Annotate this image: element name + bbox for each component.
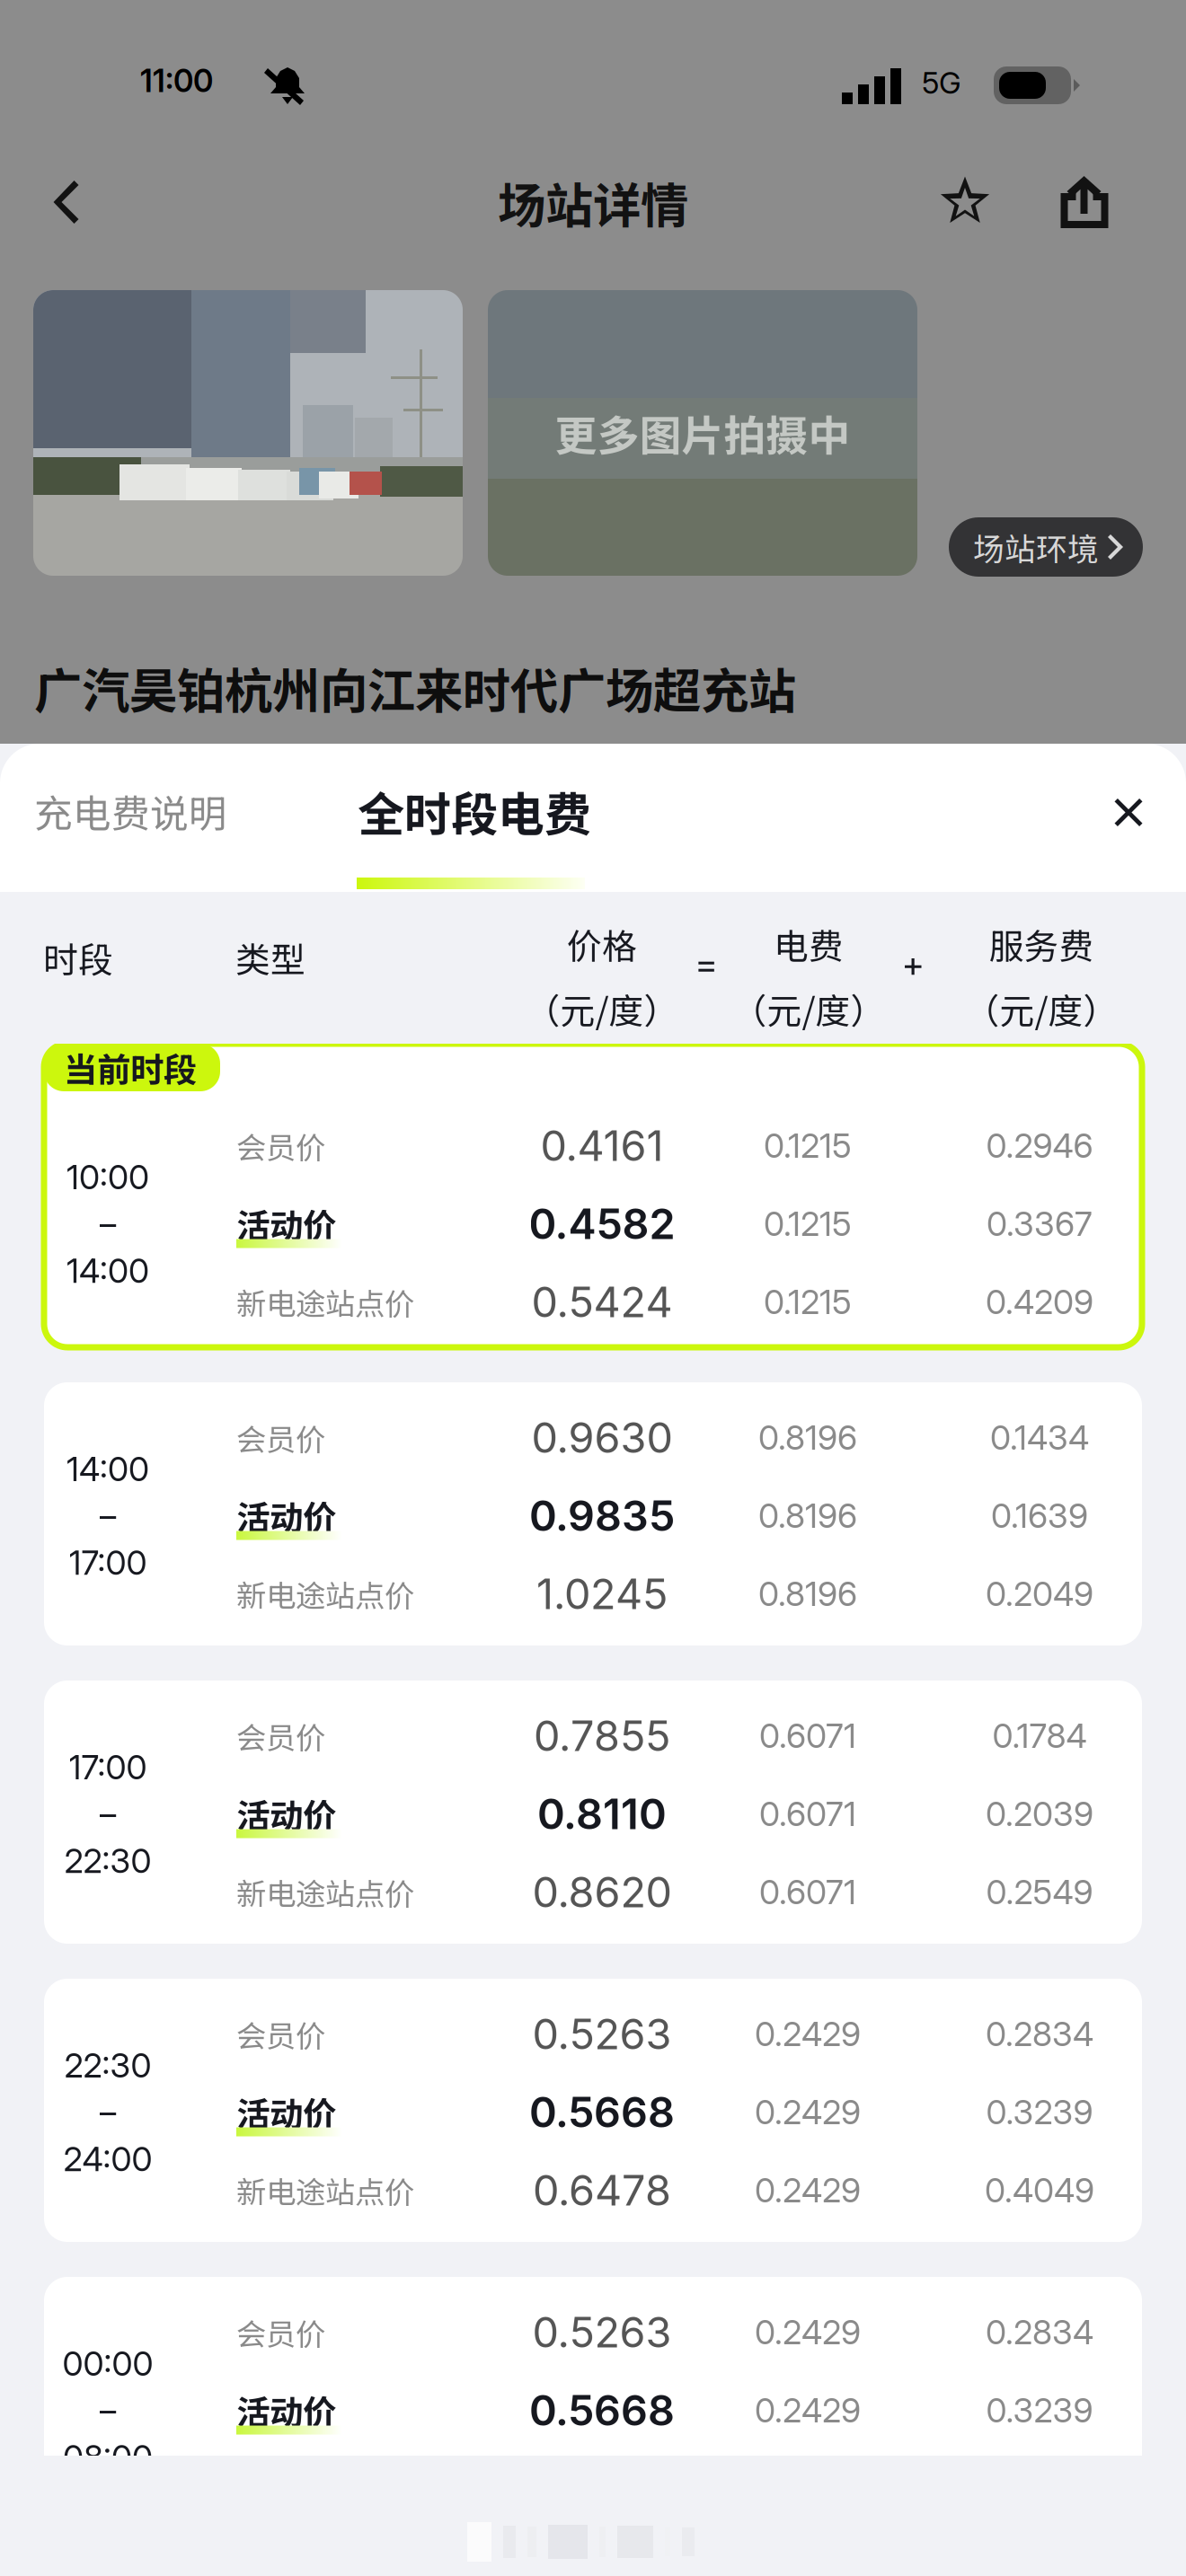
staticText: 服务费 [989,919,1094,969]
staticText: 0.8110 [537,1789,667,1839]
staticText: 24:00 [63,2139,152,2179]
staticText: 0.6071 [759,1794,856,1834]
staticText: 0.1639 [991,1495,1088,1536]
staticText: – [99,2390,116,2431]
staticText: 0.1215 [764,1282,852,1322]
staticText: 0.6071 [759,1715,856,1756]
staticText: 时段 [43,932,113,983]
staticText: 0.2834 [986,2014,1093,2054]
staticText: 0.8196 [758,1417,857,1458]
staticText: 14:00 [66,1250,149,1291]
staticText: 价格 [567,919,637,969]
staticText: = [695,942,717,986]
staticText: 新电途站点价 [236,1280,414,1324]
staticText: 0.2429 [755,2092,861,2132]
staticText: 0.5668 [529,2385,675,2436]
staticText: 充电费说明 [34,783,227,839]
staticText: 0.8620 [532,1867,672,1917]
staticText: 0.3239 [986,2390,1093,2431]
staticText: 新电途站点价 [236,1870,414,1914]
staticText: 活动价 [236,2088,336,2136]
staticText: 活动价 [236,2386,336,2435]
staticText: 0.8196 [758,1574,857,1614]
staticText: 0.6071 [759,1872,856,1912]
staticText: 电费 [774,919,844,969]
staticText: 活动价 [236,1790,336,1838]
staticText: （元/度） [732,984,885,1034]
staticText: 0.2039 [986,1794,1093,1834]
staticText: 更多图片拍摄中 [555,403,850,463]
staticText: 类型 [235,932,305,983]
staticText: 0.6478 [533,2165,671,2216]
staticText: 场站详情 [498,167,688,237]
button[interactable]: Favourite [0,144,1014,260]
staticText: 会员价 [236,1124,325,1167]
button[interactable]: 充电费说明 [0,744,281,878]
staticText: 场站环境 [973,524,1099,570]
staticText: 1.0245 [536,1569,668,1619]
staticText: 会员价 [236,2012,325,2056]
staticText: 0.8196 [758,1495,857,1536]
staticText: 当前时段 [64,1043,197,1092]
staticText: + [902,942,924,986]
staticText: 活动价 [236,1200,336,1248]
button[interactable]: Close [0,744,1186,881]
staticText: 会员价 [236,1714,325,1757]
staticText: 08:00 [63,2437,153,2477]
staticText: 0.2429 [755,2170,861,2211]
staticText: 0.2049 [986,1574,1093,1614]
staticText: 0.2429 [755,2014,861,2054]
staticText: – [99,2092,116,2132]
staticText: 14:00 [66,1449,149,1489]
staticText: – [99,1495,116,1536]
staticText: 22:30 [64,1840,151,1881]
staticText: 0.5668 [529,2087,675,2138]
staticText: 00:00 [62,2343,153,2384]
button[interactable]: 场站环境 [949,517,1143,577]
button[interactable]: 全时段电费 [0,744,645,878]
staticText: 5G [922,65,961,101]
staticText: 0.5263 [532,2009,672,2059]
staticText: （元/度） [965,984,1118,1034]
staticText: 0.3239 [986,2092,1093,2132]
staticText: 新电途站点价 [236,1572,414,1616]
staticText: 会员价 [236,1416,325,1459]
staticText: 0.4161 [540,1120,664,1171]
button[interactable]: Share [0,144,1134,260]
staticText: 0.5263 [532,2307,672,2358]
staticText: 新电途站点价 [236,2169,414,2212]
staticText: 0.2429 [755,2390,861,2431]
staticText: 22:30 [64,2045,151,2086]
staticText: 0.2549 [986,1872,1093,1912]
staticText: 活动价 [236,1491,336,1540]
staticText: 0.2429 [755,2312,861,2352]
staticText: 17:00 [69,1542,147,1583]
staticText: 17:00 [69,1747,147,1787]
staticText: 0.9630 [531,1412,673,1463]
staticText: 广汽昊铂杭州向江来时代广场超充站 [34,653,796,722]
staticText: 全时段电费 [358,777,591,845]
staticText: 0.1215 [764,1125,852,1166]
staticText: 0.2834 [986,2312,1093,2352]
button[interactable]: Back [0,144,120,260]
staticText: 会员价 [236,2310,325,2354]
staticText: 11:00 [140,62,213,100]
staticText: – [99,1203,116,1244]
staticText: 0.3367 [987,1203,1093,1244]
staticText: 0.4209 [986,1282,1093,1322]
staticText: 0.1784 [992,1715,1087,1756]
staticText: 0.9835 [529,1490,675,1541]
staticText: （元/度） [525,984,679,1034]
staticText: 0.7855 [534,1710,670,1761]
staticText: 10:00 [66,1157,149,1197]
staticText: 0.4049 [985,2170,1094,2211]
staticText: – [99,1794,116,1834]
staticText: 0.1434 [990,1417,1089,1458]
staticText: 0.5424 [531,1277,673,1327]
staticText: 0.1215 [764,1203,852,1244]
staticText: 0.2946 [986,1125,1093,1166]
